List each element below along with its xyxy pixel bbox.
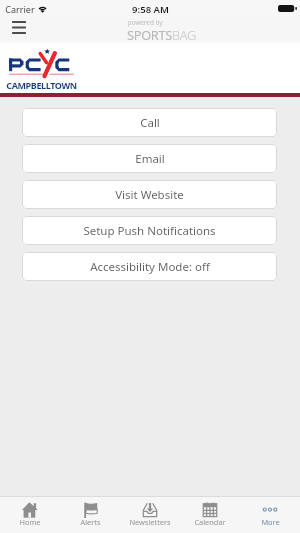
staticText: powered by (127, 18, 163, 27)
staticText: Call (140, 115, 160, 131)
button[interactable]: More (240, 497, 300, 533)
staticText: Accessibility Mode: off (90, 259, 210, 275)
staticText: Home (19, 517, 41, 527)
staticText: Setup Push Notifications (83, 223, 216, 239)
button[interactable]: Visit Website (22, 180, 277, 209)
button[interactable]: Accessibility Mode: off (22, 252, 277, 281)
staticText: Newsletters (129, 517, 171, 527)
staticText: SPORTS (127, 26, 172, 43)
staticText: Email (135, 151, 165, 167)
button[interactable]: Alerts (60, 497, 120, 533)
button[interactable]: Newsletters (120, 497, 180, 533)
staticText: Calendar (194, 517, 226, 527)
staticText: More (261, 517, 280, 527)
staticText: Carrier (5, 3, 35, 15)
button[interactable]: Calendar (180, 497, 240, 533)
button[interactable]: Setup Push Notifications (22, 216, 277, 245)
staticText: 9:58 AM (132, 3, 169, 16)
staticText: Visit Website (115, 187, 184, 203)
staticText: CAMPBELLTOWN (6, 79, 77, 91)
staticText: BAG (172, 26, 196, 43)
staticText: Alerts (80, 517, 101, 527)
button[interactable]: Call (22, 108, 277, 137)
button[interactable]: Email (22, 144, 277, 173)
button[interactable]: Menu (0, 18, 38, 37)
button[interactable]: Home (0, 497, 60, 533)
